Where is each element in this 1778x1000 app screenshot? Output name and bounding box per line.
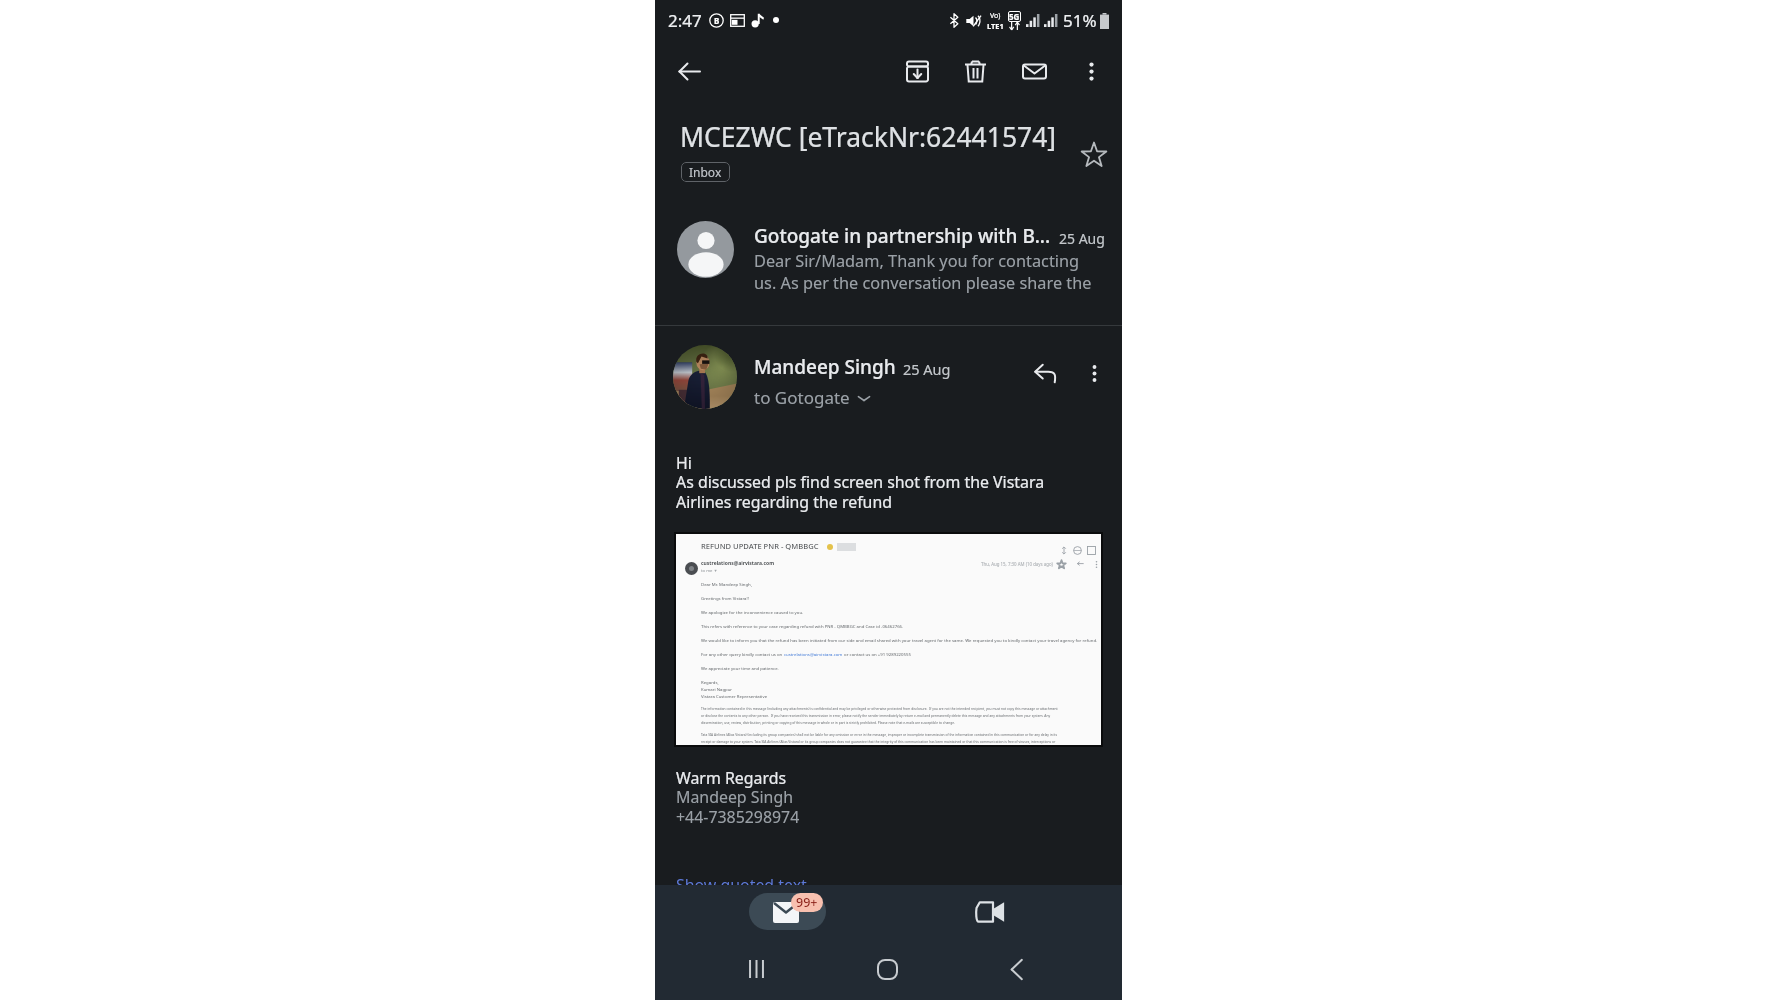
- staticText: B: [714, 15, 720, 26]
- staticText: to Gotogate: [754, 386, 850, 409]
- staticText: dissemination, use, review, distribution…: [701, 721, 955, 725]
- button[interactable]: Back: [667, 49, 711, 93]
- staticText: to me ▾: [701, 568, 717, 574]
- staticText: 5G: [1009, 11, 1020, 22]
- staticText: Hi As discussed pls find screen shot fro…: [676, 452, 1045, 513]
- button[interactable]: Recent apps: [732, 945, 780, 993]
- staticText: We appreciate your time and patience.: [701, 665, 779, 671]
- button[interactable]: Video call: [966, 888, 1014, 936]
- staticText: For any other query kindly contact us on: [701, 651, 784, 657]
- staticText: Warm Regards: [676, 767, 787, 789]
- staticText: Vistara Customer Representative: [701, 693, 768, 699]
- staticText: 25 Aug: [1059, 229, 1105, 248]
- staticText: Mandeep Singh +44-7385298974: [676, 786, 800, 828]
- staticText: We apologize for the inconvenience cause…: [701, 609, 804, 615]
- button[interactable]: Attached screenshot: [674, 532, 1103, 747]
- button[interactable]: Reply: [1024, 352, 1066, 394]
- button[interactable]: Mark as unread: [1012, 49, 1056, 93]
- staticText: Gotogate in partnership with B...: [754, 223, 1051, 249]
- staticText: Inbox: [689, 164, 722, 180]
- staticText: custrelations@airvistara.com: [701, 560, 775, 567]
- button[interactable]: Archive: [895, 49, 939, 93]
- button[interactable]: Show quoted text: [676, 874, 807, 896]
- staticText: 51%: [1063, 9, 1097, 32]
- button[interactable]: Inbox: [681, 162, 730, 182]
- staticText: We would like to inform you that the ref…: [701, 637, 1098, 643]
- button[interactable]: More options: [1069, 49, 1113, 93]
- staticText: Show quoted text: [676, 874, 807, 896]
- staticText: receipt or damage to your system. Tata S…: [701, 740, 1056, 744]
- staticText: Kumari Nagpur: [701, 686, 733, 692]
- staticText: Regards,: [701, 679, 719, 685]
- staticText: Tata SIA Airlines (Alias Vistara) (inclu…: [701, 733, 1058, 737]
- staticText: 99+: [796, 894, 818, 911]
- staticText: 25 Aug: [903, 359, 951, 379]
- staticText: This refers with reference to your case …: [701, 623, 904, 629]
- staticText: Dear Sir/Madam, Thank you for contacting…: [754, 250, 1092, 294]
- button[interactable]: Back: [993, 945, 1041, 993]
- staticText: Dear Mr. Mandeep Singh,: [701, 581, 752, 587]
- staticText: Vo): [990, 11, 1001, 21]
- staticText: or disclose the contents to any other pe…: [701, 714, 1051, 718]
- staticText: 2:47: [668, 9, 702, 32]
- staticText: or contact us on +91 9289220555: [843, 651, 911, 657]
- button[interactable]: Home: [863, 945, 911, 993]
- staticText: Thu, Aug 15, 7:30 AM (10 days ago): [981, 561, 1053, 567]
- staticText: MCEZWC [eTrackNr:62441574]: [680, 119, 1057, 155]
- button[interactable]: Gotogate in partnership with B...: [655, 200, 1122, 325]
- button[interactable]: Delete: [953, 49, 997, 93]
- button[interactable]: to Gotogate: [750, 384, 875, 411]
- staticText: The information contained in this messag…: [701, 707, 1058, 711]
- button[interactable]: Mail: [749, 887, 834, 936]
- staticText: custrelations@airvistara.com: [784, 651, 843, 657]
- staticText: Mandeep Singh: [754, 354, 896, 380]
- staticText: LTE1: [987, 21, 1004, 31]
- staticText: REFUND UPDATE PNR - QMBBGC: [701, 541, 819, 551]
- button[interactable]: Star: [1072, 133, 1116, 177]
- button[interactable]: More options: [1073, 352, 1115, 394]
- staticText: Greetings from Vistara!!: [701, 595, 749, 601]
